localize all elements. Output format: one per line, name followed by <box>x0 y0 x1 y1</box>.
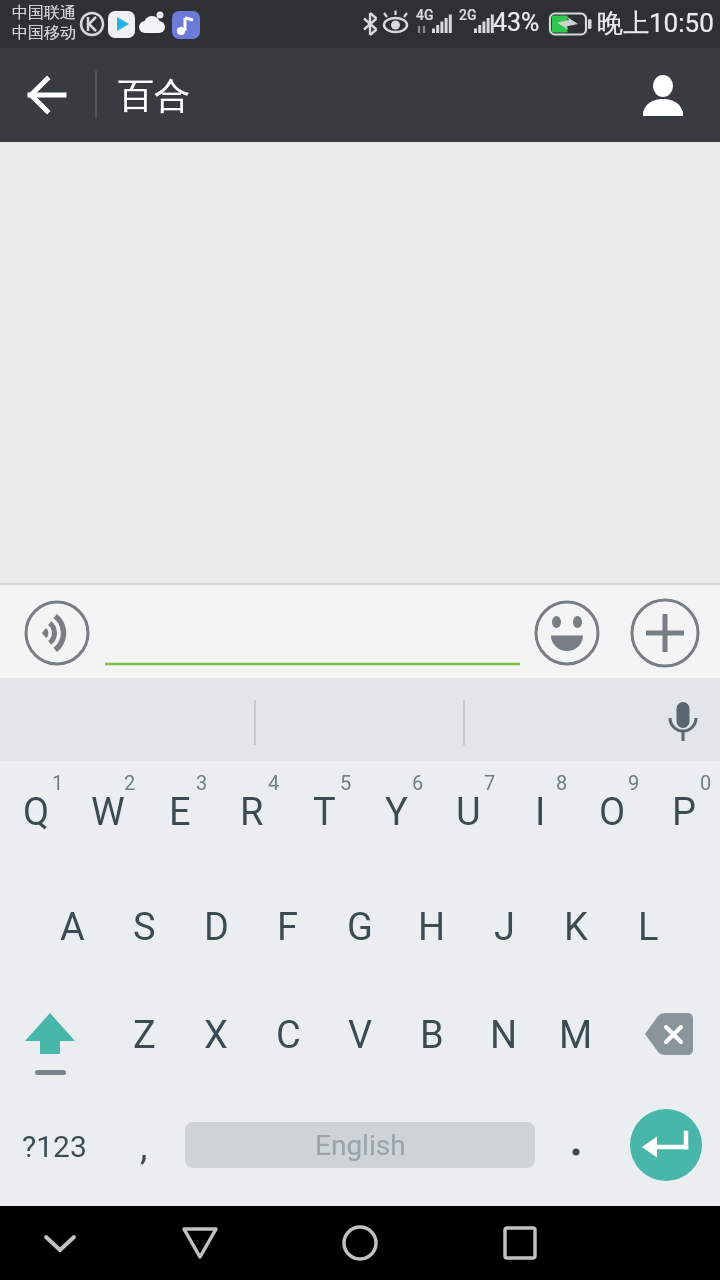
staticText: ?123 <box>22 1129 87 1164</box>
button[interactable]: K <box>540 873 612 981</box>
button[interactable]: English <box>185 1122 535 1168</box>
button[interactable]: N <box>468 981 540 1089</box>
button[interactable] <box>104 600 520 666</box>
staticText: C <box>276 1013 301 1058</box>
staticText: W <box>91 790 125 835</box>
button[interactable]: O <box>576 758 648 866</box>
button[interactable] <box>628 60 698 130</box>
button[interactable] <box>535 601 599 665</box>
staticText: L <box>638 905 659 950</box>
staticText: , <box>140 1124 148 1169</box>
staticText: K <box>564 905 588 950</box>
staticText: 4 <box>268 771 280 794</box>
button[interactable]: F <box>252 873 324 981</box>
staticText: 3 <box>196 771 208 794</box>
staticText: G <box>347 905 373 950</box>
staticText: X <box>204 1013 228 1058</box>
staticText: English <box>315 1129 406 1162</box>
button[interactable]: B <box>396 981 468 1089</box>
staticText: 中国联通 <box>12 3 76 23</box>
button[interactable] <box>10 981 92 1089</box>
button[interactable]: M <box>540 981 612 1089</box>
staticText: D <box>204 905 229 950</box>
button[interactable]: E <box>144 758 216 866</box>
button[interactable]: J <box>468 873 540 981</box>
staticText: Y <box>385 790 408 835</box>
button[interactable] <box>14 62 80 128</box>
button[interactable] <box>490 1212 550 1274</box>
button[interactable] <box>630 1109 702 1181</box>
staticText: H <box>418 905 446 950</box>
button[interactable]: V <box>324 981 396 1089</box>
staticText: 中国移动 <box>12 23 76 43</box>
button[interactable]: C <box>252 981 324 1089</box>
staticText: 8 <box>556 771 568 794</box>
staticText: E <box>169 790 191 835</box>
button[interactable]: 百合 <box>110 48 190 142</box>
button[interactable] <box>25 601 89 665</box>
staticText: U <box>456 790 481 835</box>
button[interactable]: S <box>108 873 180 981</box>
staticText: A <box>60 905 85 950</box>
staticText: 1 <box>52 771 64 794</box>
staticText: O <box>599 790 626 835</box>
staticText: T <box>313 790 336 835</box>
staticText: P <box>672 790 696 835</box>
button[interactable]: Y <box>360 758 432 866</box>
button[interactable] <box>540 1094 612 1198</box>
button[interactable] <box>30 1212 90 1274</box>
button[interactable]: H <box>396 873 468 981</box>
staticText: R <box>240 790 264 835</box>
button[interactable]: W <box>72 758 144 866</box>
button[interactable]: X <box>180 981 252 1089</box>
staticText: Z <box>133 1013 156 1058</box>
staticText: J <box>494 905 515 950</box>
staticText: I <box>535 790 546 835</box>
staticText: 晚上10:50 <box>597 7 714 40</box>
staticText: 4G <box>416 7 434 23</box>
staticText: 43% <box>493 8 540 37</box>
button[interactable]: T <box>288 758 360 866</box>
staticText: F <box>277 905 299 950</box>
staticText: V <box>348 1013 373 1058</box>
staticText: 2 <box>124 771 136 794</box>
button[interactable] <box>659 688 709 756</box>
staticText: 0 <box>700 771 712 794</box>
staticText: 7 <box>484 771 496 794</box>
button[interactable]: R <box>216 758 288 866</box>
staticText: 2G <box>459 7 477 23</box>
button[interactable]: Q <box>0 758 72 866</box>
button[interactable]: D <box>180 873 252 981</box>
staticText: N <box>490 1013 518 1058</box>
staticText: S <box>133 905 156 950</box>
staticText: M <box>559 1013 593 1058</box>
staticText: 百合 <box>118 73 190 118</box>
button[interactable] <box>628 981 710 1089</box>
button[interactable]: L <box>612 873 684 981</box>
button[interactable] <box>170 1212 230 1274</box>
button[interactable]: ?123 <box>12 1094 96 1198</box>
staticText: B <box>420 1013 444 1058</box>
staticText: 6 <box>412 771 424 794</box>
staticText: 5 <box>340 771 352 794</box>
button[interactable] <box>330 1212 390 1274</box>
button[interactable]: P <box>648 758 720 866</box>
staticText: Q <box>23 790 50 835</box>
staticText: 9 <box>628 771 640 794</box>
button[interactable] <box>631 599 699 667</box>
button[interactable]: G <box>324 873 396 981</box>
button[interactable]: A <box>36 873 108 981</box>
button[interactable]: I <box>504 758 576 866</box>
button[interactable]: , <box>108 1094 180 1198</box>
button[interactable]: U <box>432 758 504 866</box>
button[interactable]: Z <box>108 981 180 1089</box>
